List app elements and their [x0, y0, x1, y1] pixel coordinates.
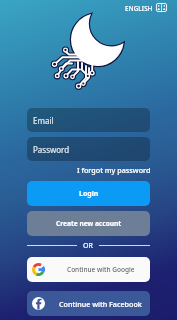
button[interactable]: I forgot my password	[77, 165, 151, 175]
other: Change language	[156, 3, 167, 12]
button[interactable]: Password	[27, 137, 150, 161]
staticText: OR	[83, 241, 93, 251]
staticText: Create new account	[56, 219, 122, 228]
button[interactable]: Login	[27, 181, 150, 206]
staticText: Continue with Google	[67, 265, 135, 274]
staticText: Password	[33, 144, 70, 155]
button[interactable]: Create new account	[27, 211, 150, 236]
button[interactable]: ENGLISH	[124, 2, 168, 13]
staticText: Continue with Facebook	[59, 299, 142, 309]
staticText: ENGLISH	[125, 4, 153, 12]
staticText: Email	[33, 115, 54, 126]
button[interactable]: Continue with Google	[27, 257, 150, 282]
staticText: Login	[79, 189, 99, 199]
button[interactable]: Email	[27, 108, 150, 132]
button[interactable]: Continue with Facebook	[27, 291, 150, 316]
